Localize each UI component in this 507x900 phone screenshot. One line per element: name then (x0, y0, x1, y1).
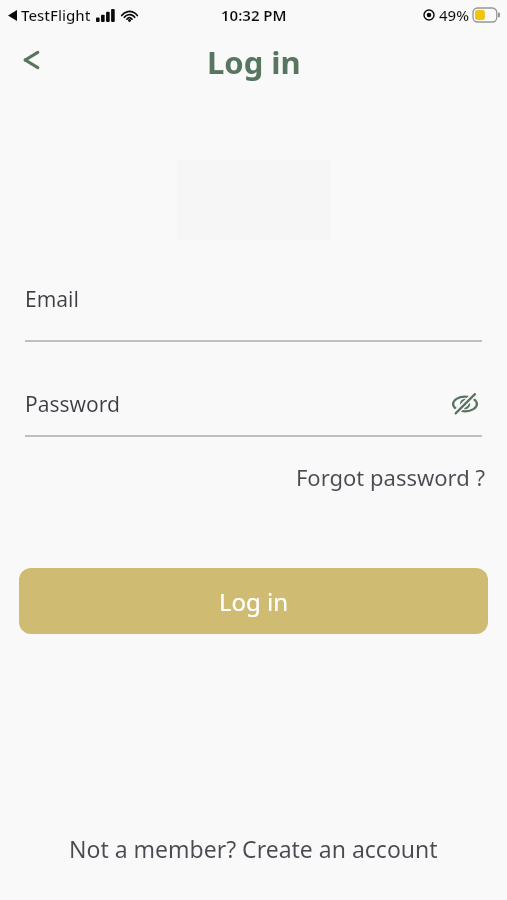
button[interactable]: Back (8, 38, 52, 82)
staticText: 10:32 PM (221, 5, 287, 25)
button[interactable]: Not a member? Create an account (57, 827, 450, 870)
staticText: 49% (439, 5, 469, 25)
staticText: Email (25, 285, 79, 314)
staticText: TestFlight (21, 5, 91, 25)
button[interactable]: Email (25, 285, 482, 342)
staticText: Log in (207, 41, 301, 83)
button[interactable]: Show password (448, 387, 482, 421)
staticText: Log in (219, 585, 289, 618)
button[interactable]: Forgot password ? (295, 458, 485, 496)
button[interactable]: Password (25, 390, 120, 419)
button[interactable]: Log in (19, 568, 488, 634)
